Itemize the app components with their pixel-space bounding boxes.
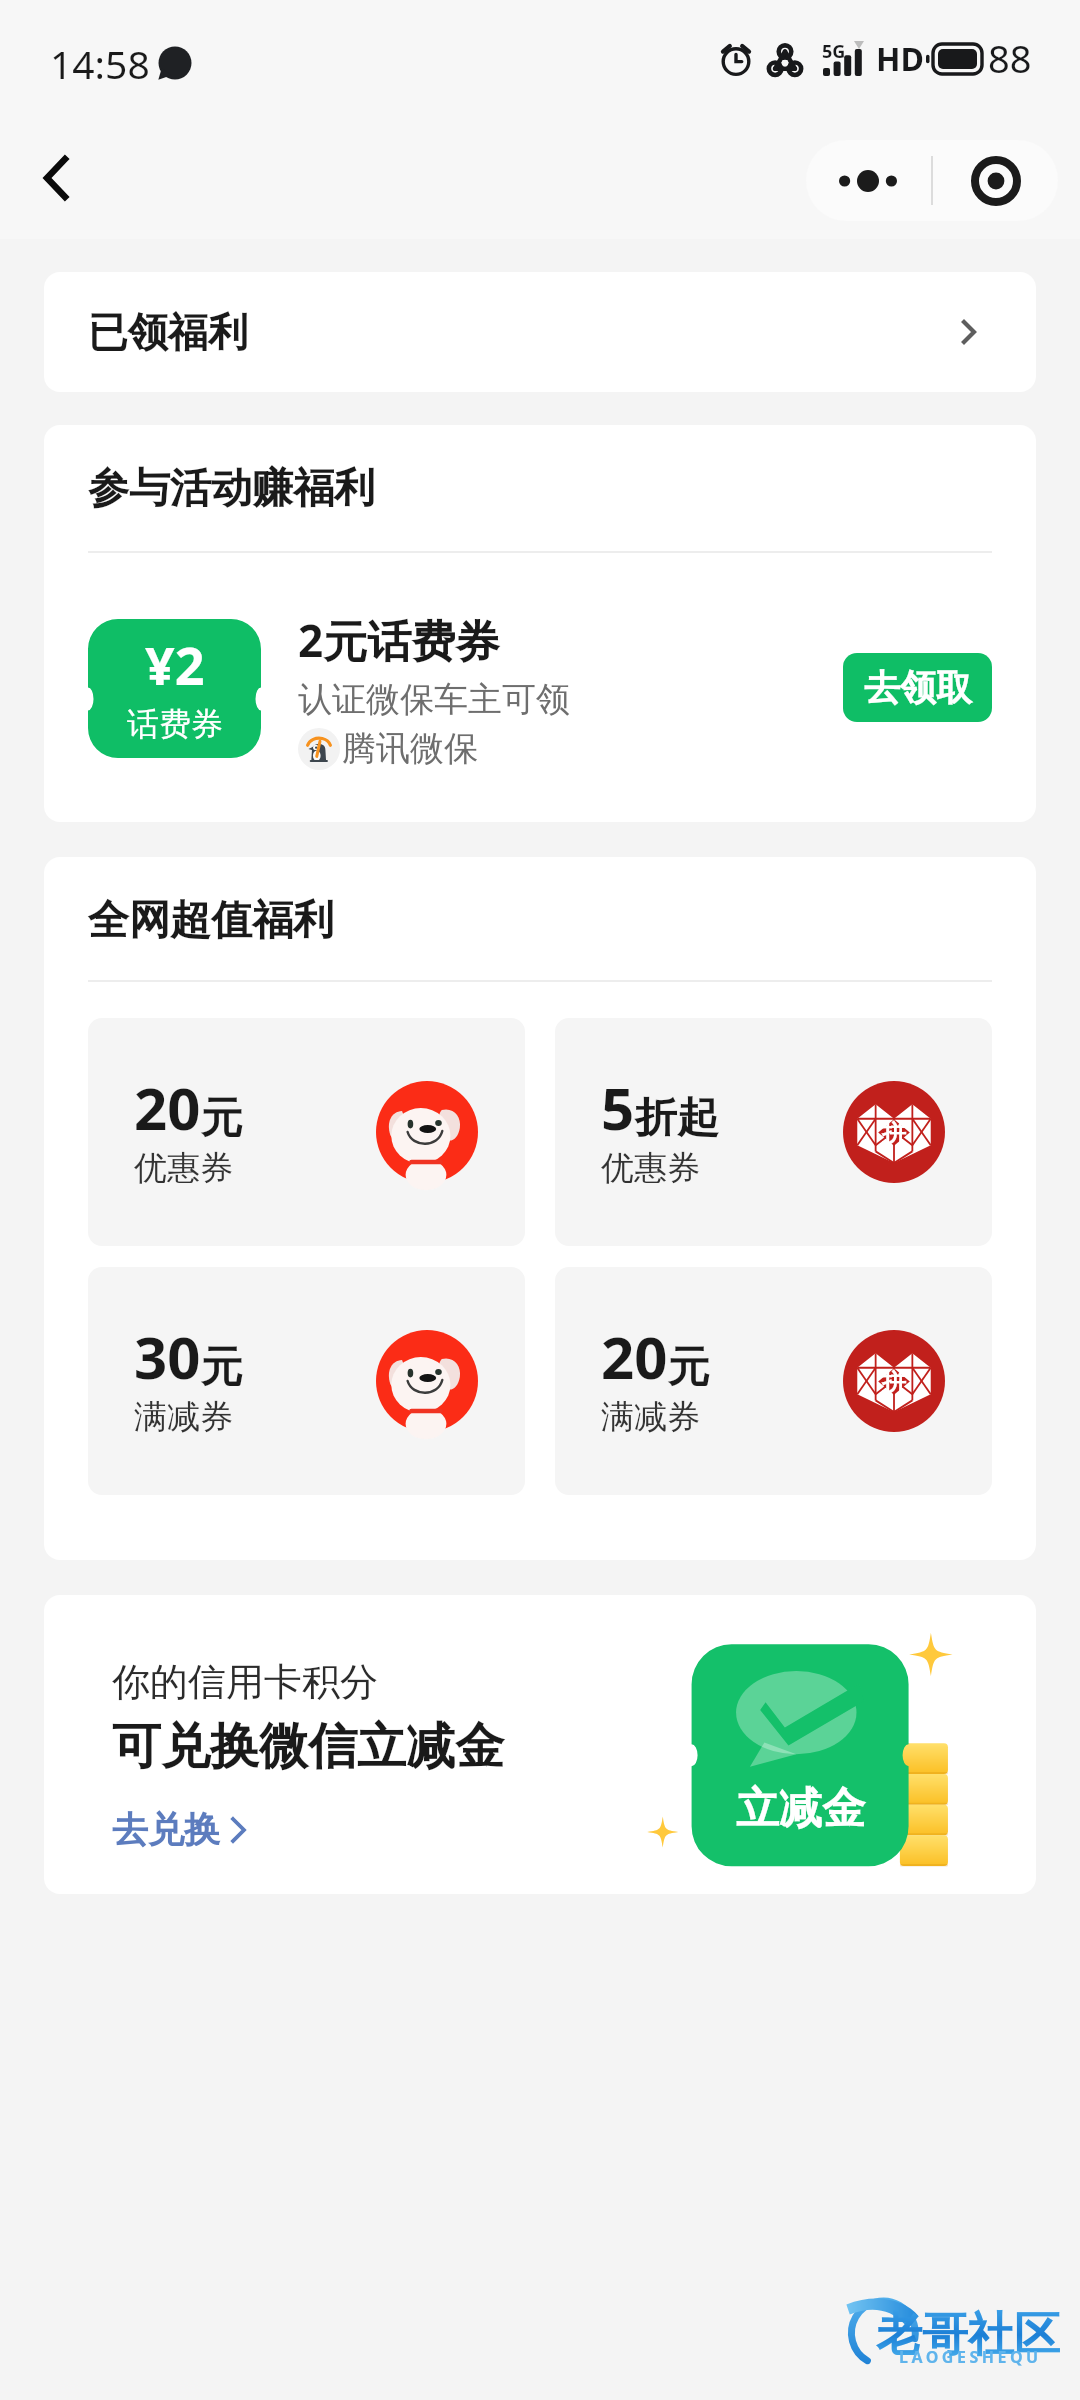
button[interactable]: 已领福利 <box>44 272 1036 392</box>
staticText: 20 <box>134 1068 201 1147</box>
staticText: 拼 <box>882 1118 906 1148</box>
staticText: 优惠券 <box>601 1147 700 1189</box>
staticText: 你的信用卡积分 <box>112 1658 378 1706</box>
staticText: 可兑换微信立减金 <box>112 1716 504 1778</box>
staticText: 元 <box>668 1341 710 1394</box>
button[interactable]: 20 <box>88 1018 525 1246</box>
staticText: 去领取 <box>864 665 972 710</box>
staticText: 立减金 <box>736 1782 865 1836</box>
staticText: 元 <box>201 1092 243 1145</box>
staticText: 30 <box>134 1317 201 1396</box>
staticText: 满减券 <box>601 1396 700 1438</box>
staticText: 老哥社区 <box>876 2306 1060 2364</box>
staticText: 认证微保车主可领 <box>298 678 570 721</box>
button[interactable]: More options <box>806 140 931 221</box>
staticText: 拼 <box>882 1367 906 1397</box>
button[interactable]: Back <box>19 144 91 216</box>
button[interactable]: Close mini program <box>933 140 1058 221</box>
staticText: 5 <box>601 1068 635 1147</box>
staticText: 2元话费券 <box>298 610 500 670</box>
staticText: 88 <box>988 32 1032 84</box>
staticText: 全网超值福利 <box>88 895 334 947</box>
staticText: 5G <box>822 39 846 64</box>
staticText: 去兑换 <box>112 1807 220 1852</box>
button[interactable]: 30 <box>88 1267 525 1495</box>
staticText: 满减券 <box>134 1396 233 1438</box>
staticText: 20 <box>601 1317 668 1396</box>
staticText: HD <box>876 37 924 81</box>
staticText: 已领福利 <box>88 307 248 357</box>
staticText: 14:58 <box>50 37 150 90</box>
button[interactable]: 去兑换 <box>112 1807 246 1852</box>
staticText: 折起 <box>635 1092 719 1145</box>
staticText: 腾讯微保 <box>342 727 478 770</box>
staticText: 话费券 <box>127 704 223 744</box>
staticText: 参与活动赚福利 <box>88 463 375 515</box>
button[interactable]: 20 <box>555 1267 992 1495</box>
staticText: LAOGESHEQU <box>899 2346 1042 2368</box>
staticText: 优惠券 <box>134 1147 233 1189</box>
button[interactable]: 去领取 <box>843 653 992 722</box>
staticText: 元 <box>201 1341 243 1394</box>
button[interactable]: 5 <box>555 1018 992 1246</box>
staticText: ¥2 <box>145 629 205 700</box>
button[interactable]: 你的信用卡积分 <box>44 1595 1036 1894</box>
